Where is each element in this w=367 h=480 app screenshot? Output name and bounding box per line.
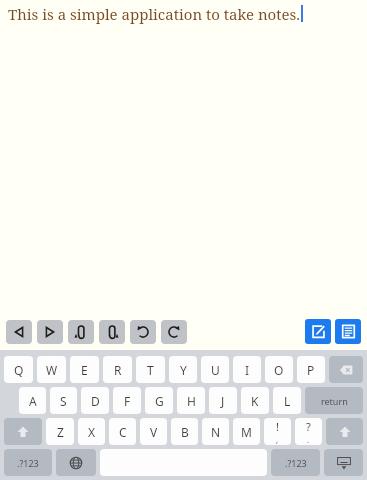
staticText: ! <box>276 419 279 434</box>
button[interactable]: N <box>202 418 229 445</box>
button[interactable]: .?123 <box>4 449 52 476</box>
button[interactable]: Shift <box>4 418 42 445</box>
staticText: F <box>124 393 131 409</box>
staticText: P <box>307 362 315 378</box>
button[interactable]: R <box>103 356 132 383</box>
button[interactable]: A <box>19 387 46 414</box>
button[interactable]: K <box>241 387 269 414</box>
staticText: V <box>150 424 158 440</box>
staticText: N <box>211 424 221 440</box>
staticText: Z <box>57 424 64 440</box>
staticText: , <box>276 434 279 445</box>
staticText: .?123 <box>285 457 307 469</box>
staticText: O <box>274 362 284 378</box>
button[interactable]: Next <box>37 320 63 344</box>
staticText: This is a simple application to take not… <box>8 4 301 24</box>
staticText: X <box>88 424 96 440</box>
staticText: S <box>60 393 67 409</box>
button[interactable]: Undo <box>130 320 156 344</box>
button[interactable]: Language <box>56 449 96 476</box>
button[interactable]: C <box>109 418 136 445</box>
button[interactable]: ? <box>295 418 322 445</box>
button[interactable]: P <box>297 356 325 383</box>
button[interactable]: Y <box>169 356 197 383</box>
button[interactable]: U <box>201 356 229 383</box>
staticText: ? <box>306 419 311 434</box>
button[interactable]: .?123 <box>271 449 320 476</box>
button[interactable]: Previous <box>6 320 32 344</box>
button[interactable]: W <box>37 356 66 383</box>
button[interactable]: V <box>140 418 167 445</box>
staticText: I <box>245 362 250 378</box>
staticText: M <box>241 424 252 440</box>
staticText: return <box>321 395 348 407</box>
staticText: B <box>181 424 189 440</box>
staticText: D <box>91 393 100 409</box>
staticText: E <box>81 362 88 378</box>
button[interactable]: Q <box>4 356 33 383</box>
staticText: .?123 <box>17 457 39 469</box>
staticText: A <box>29 393 37 409</box>
button[interactable]: ! <box>264 418 291 445</box>
staticText: W <box>46 362 58 378</box>
staticText: . <box>307 434 310 445</box>
staticText: T <box>147 362 154 378</box>
button[interactable]: G <box>145 387 173 414</box>
button[interactable]: Notes list <box>335 319 361 344</box>
staticText: J <box>221 393 225 409</box>
staticText: Q <box>14 362 24 378</box>
button[interactable]: T <box>136 356 165 383</box>
button[interactable]: Z <box>46 418 74 445</box>
button[interactable]: Backspace <box>329 356 363 383</box>
staticText: H <box>187 393 196 409</box>
button[interactable]: Redo <box>161 320 187 344</box>
staticText: G <box>155 393 164 409</box>
button[interactable]: O <box>265 356 293 383</box>
button[interactable]: X <box>78 418 105 445</box>
button[interactable]: Hide keyboard <box>324 449 363 476</box>
button[interactable]: E <box>70 356 99 383</box>
staticText: C <box>119 424 127 440</box>
button[interactable]: I <box>233 356 261 383</box>
staticText: R <box>114 362 122 378</box>
button[interactable]: L <box>273 387 301 414</box>
button[interactable]: S <box>50 387 77 414</box>
button[interactable]: M <box>233 418 260 445</box>
staticText: L <box>284 393 291 409</box>
button[interactable]: D <box>81 387 109 414</box>
staticText: Y <box>180 362 187 378</box>
staticText: U <box>211 362 220 378</box>
button[interactable]: Attach file <box>68 320 94 344</box>
button[interactable]: J <box>209 387 237 414</box>
button[interactable]: Shift <box>326 418 363 445</box>
button[interactable]: B <box>171 418 198 445</box>
button[interactable]: New note <box>305 319 331 344</box>
button[interactable]: F <box>113 387 141 414</box>
button[interactable]: Detach file <box>99 320 125 344</box>
staticText: K <box>251 393 259 409</box>
button[interactable]: return <box>305 387 363 414</box>
button[interactable]: H <box>177 387 205 414</box>
